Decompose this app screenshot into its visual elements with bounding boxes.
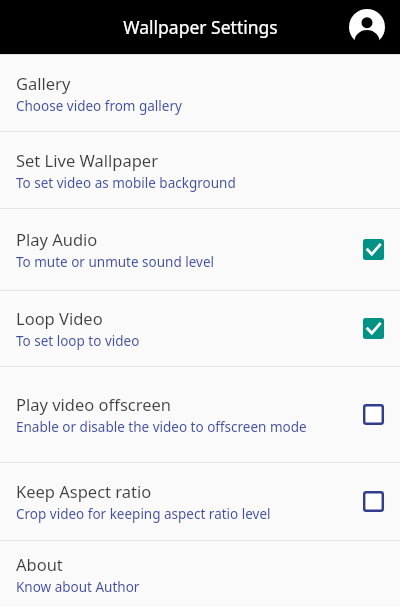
button[interactable]: Gallery (0, 55, 400, 131)
staticText: To set video as mobile background (16, 174, 236, 192)
staticText: Set Live Wallpaper (16, 149, 158, 171)
staticText: To mute or unmute sound level (16, 253, 215, 271)
button[interactable]: Unchecked, toggle on (363, 404, 384, 425)
staticText: Loop Video (16, 307, 103, 329)
button[interactable]: Set Live Wallpaper (0, 132, 400, 208)
staticText: Gallery (16, 72, 71, 94)
staticText: Know about Author (16, 578, 140, 596)
staticText: Play Audio (16, 228, 98, 250)
staticText: About (16, 553, 63, 575)
button[interactable]: Play Audio (0, 209, 400, 290)
button[interactable]: About (0, 541, 400, 607)
button[interactable]: Play video offscreen (0, 367, 400, 462)
staticText: To set loop to video (16, 332, 140, 350)
button[interactable]: Loop Video (0, 291, 400, 366)
button[interactable]: Unchecked, toggle on (363, 491, 384, 512)
staticText: Play video offscreen (16, 393, 172, 415)
staticText: Crop video for keeping aspect ratio leve… (16, 505, 271, 523)
staticText: Enable or disable the video to offscreen… (16, 418, 307, 436)
staticText: Keep Aspect ratio (16, 480, 152, 502)
staticText: Wallpaper Settings (123, 15, 278, 39)
staticText: Choose video from gallery (16, 97, 182, 115)
button[interactable]: Checked, toggle off (363, 318, 384, 339)
button[interactable]: Checked, toggle off (363, 239, 384, 260)
button[interactable]: Account (347, 7, 387, 47)
button[interactable]: Keep Aspect ratio (0, 463, 400, 540)
